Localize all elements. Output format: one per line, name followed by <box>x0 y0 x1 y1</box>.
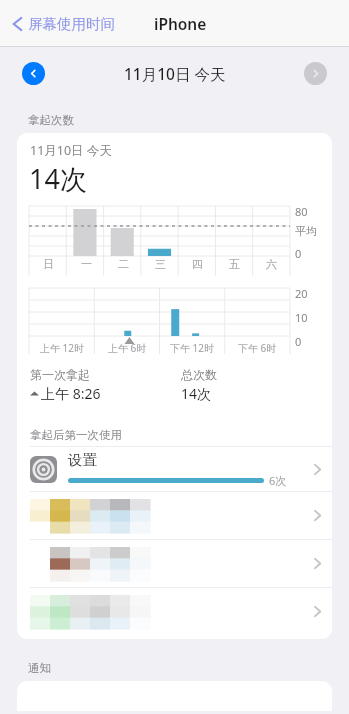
staticText: 拿起次数 <box>28 113 74 127</box>
staticText: 二 <box>118 257 129 271</box>
staticText: 六 <box>266 257 277 271</box>
staticText: 上午 6时 <box>108 341 147 355</box>
button[interactable]: 设置 <box>17 447 332 491</box>
staticText: 下午 6时 <box>238 341 277 355</box>
staticText: 五 <box>229 257 240 271</box>
button[interactable]: App usage entry <box>17 492 332 539</box>
staticText: 通知 <box>28 661 51 675</box>
staticText: 四 <box>192 257 203 271</box>
button[interactable]: 屏幕使用时间 <box>8 11 119 37</box>
staticText: 10 <box>295 310 308 325</box>
staticText: iPhone <box>154 13 207 34</box>
staticText: 总次数 <box>181 367 217 382</box>
staticText: 11月10日 今天 <box>124 63 226 84</box>
staticText: 80 <box>295 204 308 219</box>
staticText: 6次 <box>269 473 287 488</box>
button[interactable]: Next day <box>304 62 327 85</box>
button[interactable]: App usage entry <box>17 588 332 635</box>
staticText: 拿起后第一次使用 <box>30 428 122 442</box>
staticText: 三 <box>155 257 166 271</box>
staticText: 0 <box>295 334 302 349</box>
button[interactable]: App usage entry <box>17 540 332 587</box>
staticText: 第一次拿起 <box>30 367 90 382</box>
staticText: 一 <box>81 257 92 271</box>
staticText: 平均 <box>295 224 317 238</box>
staticText: 14次 <box>181 384 212 403</box>
staticText: 上午 12时 <box>40 341 85 355</box>
staticText: 下午 12时 <box>170 341 215 355</box>
staticText: 20 <box>295 286 308 301</box>
staticText: 屏幕使用时间 <box>28 15 115 33</box>
staticText: 日 <box>43 257 54 271</box>
button[interactable]: Previous day <box>22 62 45 85</box>
staticText: 上午 8:26 <box>41 384 101 403</box>
staticText: 设置 <box>68 451 97 469</box>
staticText: 0 <box>295 246 302 261</box>
staticText: 14次 <box>29 160 87 197</box>
staticText: 11月10日 今天 <box>30 142 112 159</box>
